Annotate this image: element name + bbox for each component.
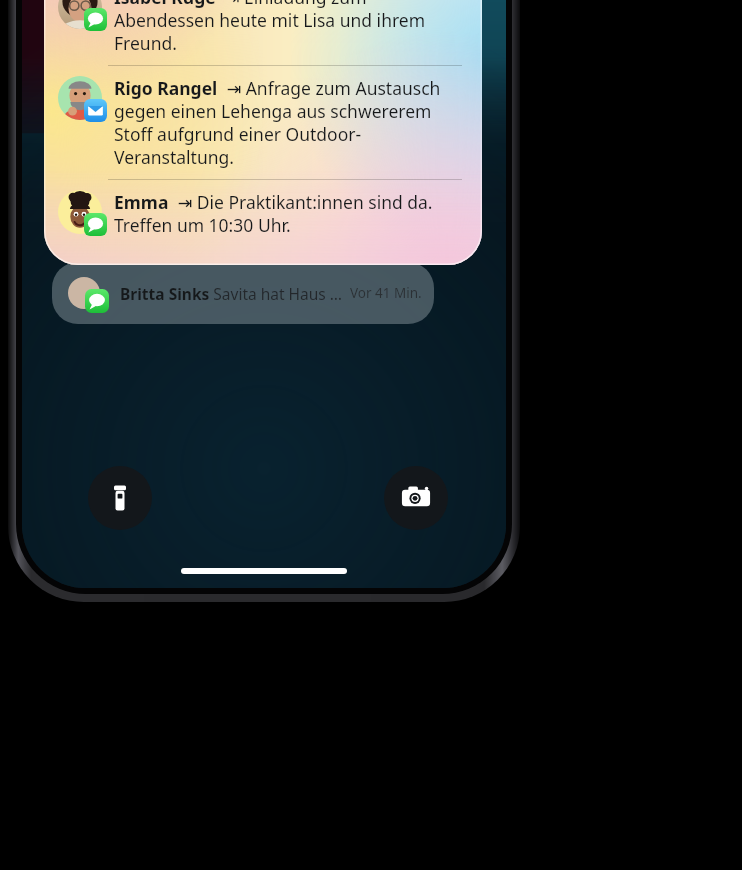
button[interactable]: Taschenlampe xyxy=(88,466,152,530)
button[interactable]: Emma ⇥ Die Praktikant:innen sind da. Tre… xyxy=(58,180,464,247)
staticText: Emma ⇥ Die Praktikant:innen sind da. Tre… xyxy=(114,190,464,237)
staticText: Britta Sinks Savita hat Haus … xyxy=(120,283,343,304)
button[interactable]: Rigo Rangel ⇥ Anfrage zum Austausch gege… xyxy=(58,66,464,179)
staticText: Isabel Ruge ⇥ Einladung zum Abendessen h… xyxy=(114,0,464,55)
button[interactable]: Kamera xyxy=(384,466,448,530)
button[interactable]: Isabel Ruge ⇥ Einladung zum Abendessen h… xyxy=(58,0,464,65)
staticText: Vor 41 Min. xyxy=(350,284,422,302)
button[interactable]: Britta Sinks Savita hat Haus … xyxy=(52,262,434,324)
staticText: Rigo Rangel ⇥ Anfrage zum Austausch gege… xyxy=(114,76,464,169)
button[interactable]: Mitteilungen mit Priorität xyxy=(44,0,482,265)
